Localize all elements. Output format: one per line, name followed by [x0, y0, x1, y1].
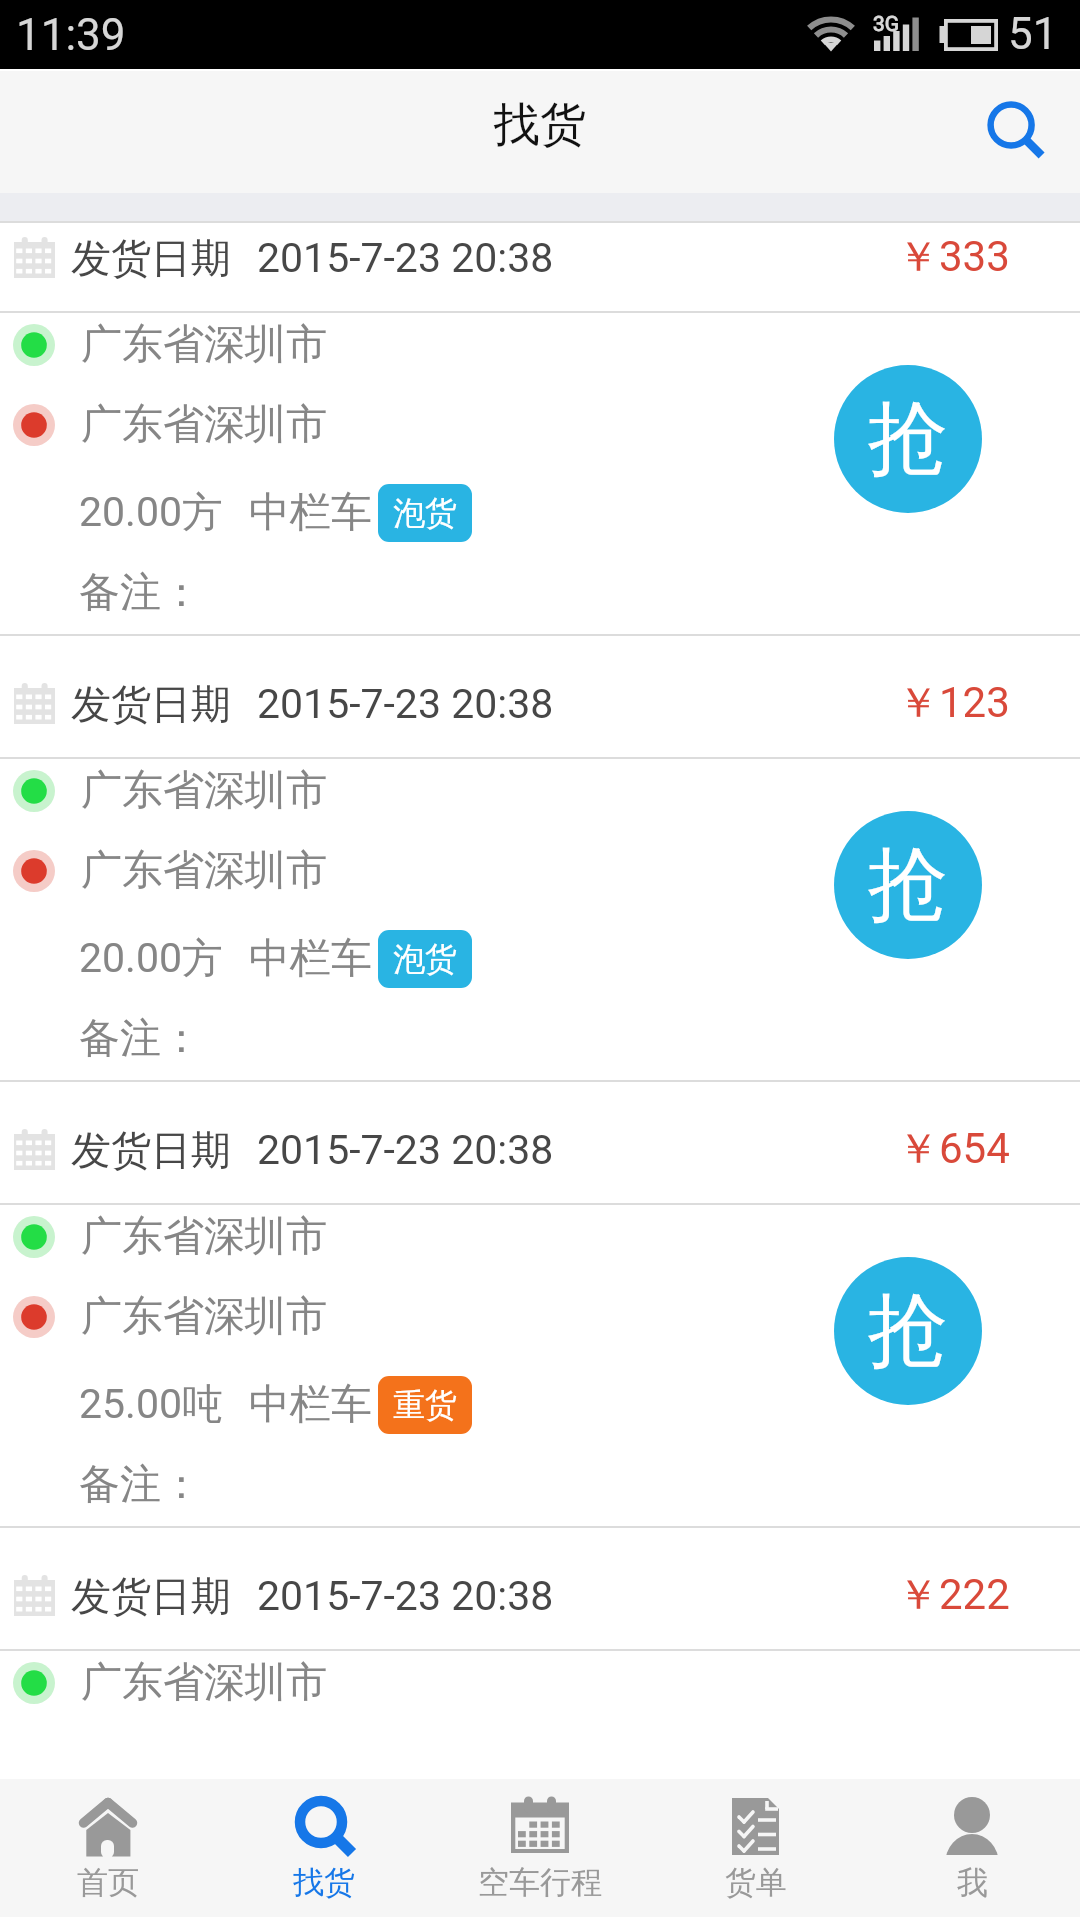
staticText: 抢	[868, 1281, 948, 1382]
staticText: 找货	[293, 1863, 355, 1902]
button[interactable]: 找货	[216, 1779, 432, 1917]
staticText: 广东省深圳市	[81, 1211, 327, 1263]
staticText: 空车行程	[478, 1863, 602, 1902]
staticText: 51	[1008, 8, 1058, 60]
staticText: 2015-7-23 20:38	[257, 1126, 554, 1174]
staticText: 11:39	[16, 9, 126, 61]
staticText: 广东省深圳市	[81, 845, 327, 897]
button[interactable]: 发货日期	[0, 1082, 1080, 1526]
staticText: 2015-7-23 20:38	[257, 234, 554, 282]
staticText: 首页	[77, 1863, 139, 1902]
button[interactable]: 首页	[0, 1779, 216, 1917]
staticText: 发货日期	[71, 1125, 231, 1175]
staticText: ￥123	[897, 677, 1010, 730]
staticText: 泡货	[393, 939, 457, 979]
staticText: ￥654	[897, 1123, 1010, 1176]
staticText: 货单	[725, 1863, 787, 1902]
staticText: 备注：	[79, 1013, 202, 1065]
button[interactable]: 抢单	[834, 1257, 982, 1405]
staticText: 广东省深圳市	[81, 1657, 327, 1709]
staticText: 抢	[868, 835, 948, 936]
button[interactable]: 发货日期	[0, 223, 1080, 634]
staticText: 广东省深圳市	[81, 1291, 327, 1343]
staticText: 20.00方	[79, 487, 223, 539]
staticText: 泡货	[393, 493, 457, 533]
staticText: 2015-7-23 20:38	[257, 680, 554, 728]
staticText: 广东省深圳市	[81, 319, 327, 371]
staticText: 广东省深圳市	[81, 765, 327, 817]
staticText: 发货日期	[71, 233, 231, 283]
button[interactable]: 发货日期	[0, 1528, 1080, 1746]
staticText: 备注：	[79, 1459, 202, 1511]
staticText: 中栏车	[249, 933, 372, 985]
staticText: ￥222	[897, 1569, 1010, 1622]
button[interactable]: 空车行程	[432, 1779, 648, 1917]
staticText: 我	[957, 1863, 988, 1902]
button[interactable]: 我	[864, 1779, 1080, 1917]
staticText: 广东省深圳市	[81, 399, 327, 451]
staticText: 中栏车	[249, 1379, 372, 1431]
staticText: 发货日期	[71, 1571, 231, 1621]
button[interactable]: 抢单	[834, 811, 982, 959]
staticText: 抢	[868, 389, 948, 490]
staticText: 中栏车	[249, 487, 372, 539]
button[interactable]: 发货日期	[0, 636, 1080, 1080]
staticText: 2015-7-23 20:38	[257, 1572, 554, 1620]
button[interactable]: 货单	[648, 1779, 864, 1917]
staticText: ￥333	[897, 231, 1010, 284]
staticText: 备注：	[79, 567, 202, 619]
button[interactable]: 抢单	[834, 365, 982, 513]
staticText: 25.00吨	[79, 1379, 223, 1431]
staticText: 3G	[873, 12, 900, 37]
staticText: 找货	[494, 96, 586, 154]
staticText: 重货	[393, 1385, 457, 1425]
button[interactable]: Search	[966, 82, 1066, 182]
staticText: 20.00方	[79, 933, 223, 985]
staticText: 发货日期	[71, 679, 231, 729]
